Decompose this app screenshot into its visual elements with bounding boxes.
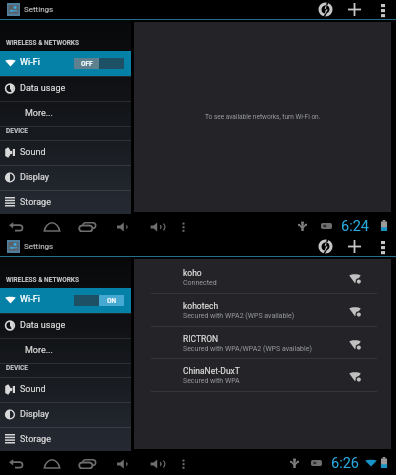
button[interactable]: kohotech [134,294,391,326]
staticText: More... [25,345,53,356]
button[interactable]: Storage [0,191,131,215]
button[interactable]: More... [0,102,131,126]
staticText: koho [183,268,202,278]
button[interactable]: Data usage [0,77,131,101]
staticText: 6:24 [341,218,369,235]
staticText: ChinaNet-DuxT [183,366,240,376]
button[interactable]: Volume down [112,214,133,237]
staticText: Sound [20,384,46,395]
button[interactable]: Home [40,451,64,475]
staticText: kohotech [183,301,219,311]
staticText: Storage [20,434,51,445]
staticText: WIRELESS & NETWORKS [6,39,79,47]
staticText: WIRELESS & NETWORKS [6,276,79,284]
staticText: Data usage [20,320,66,331]
staticText: Secured with WPA [183,377,240,385]
button[interactable]: Display [0,403,131,427]
button[interactable]: Add network [345,0,364,19]
staticText: Sound [20,147,46,158]
staticText: Data usage [20,83,66,94]
staticText: RICTRON [183,334,219,344]
staticText: To see available networks, turn Wi-Fi on… [205,113,321,121]
button[interactable]: Scan for networks [316,237,335,256]
staticText: Display [20,409,50,420]
staticText: Display [20,172,50,183]
button[interactable]: koho [134,261,391,293]
button[interactable]: Volume down [112,451,133,475]
button[interactable]: Back [5,451,28,475]
button[interactable]: Recent apps [75,451,100,475]
button[interactable]: ON [74,295,124,306]
button[interactable]: Storage [0,428,131,452]
staticText: DEVICE [6,364,28,372]
button[interactable]: More options [373,0,392,19]
button[interactable]: RICTRON [134,327,391,359]
staticText: Storage [20,197,51,208]
staticText: 6:26 [331,455,359,472]
staticText: ON [107,297,117,305]
button[interactable]: Home [40,214,64,237]
button[interactable]: ChinaNet-DuxT [134,359,391,391]
staticText: Wi-Fi [20,294,40,305]
button[interactable]: Scan for networks [316,0,335,19]
button[interactable]: Wi-Fi [0,288,131,313]
staticText: Secured with WPA2 (WPS available) [183,312,295,320]
button[interactable]: Volume up [146,214,169,237]
staticText: Settings [24,5,54,14]
button[interactable]: Sound [0,378,131,402]
button[interactable]: More... [0,339,131,363]
button[interactable]: Sound [0,141,131,165]
button[interactable]: Data usage [0,314,131,338]
button[interactable]: OFF [74,58,124,69]
button[interactable]: Recent apps [75,214,100,237]
button[interactable]: Display [0,166,131,190]
button[interactable]: Menu [177,214,190,237]
button[interactable]: Back [5,214,28,237]
staticText: More... [25,108,53,119]
button[interactable]: Add network [345,237,364,256]
button[interactable]: More options [373,237,392,256]
staticText: Secured with WPA/WPA2 (WPS available) [183,345,312,353]
button[interactable]: Wi-Fi [0,51,131,76]
staticText: DEVICE [6,127,28,135]
staticText: Wi-Fi [20,57,40,68]
button[interactable]: Menu [177,451,190,475]
staticText: OFF [81,60,93,68]
staticText: Settings [24,242,54,251]
button[interactable]: Volume up [146,451,169,475]
staticText: Connected [183,279,217,287]
